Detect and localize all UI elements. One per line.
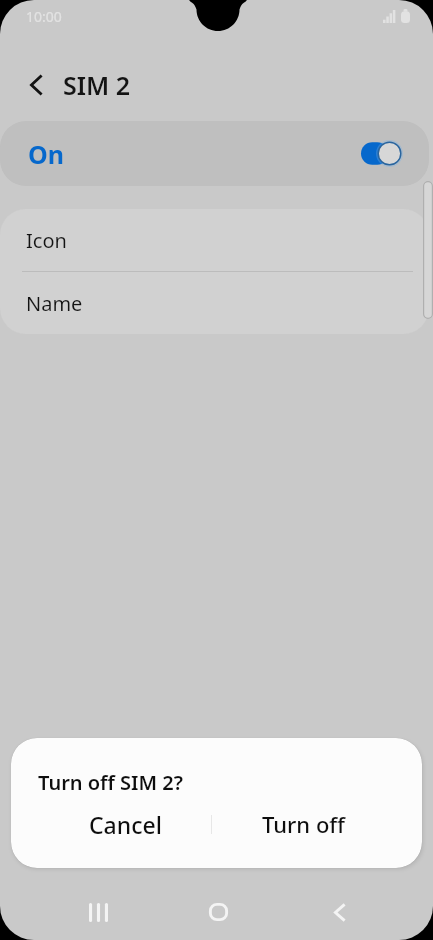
staticText: Turn off SIM 2?	[38, 769, 183, 796]
staticText: 10:00	[26, 7, 62, 26]
button[interactable]: On	[0, 121, 429, 186]
staticText: SIM 2	[63, 68, 131, 102]
button[interactable]: Recent apps	[70, 884, 126, 940]
staticText: Cancel	[89, 809, 162, 840]
button[interactable]: Cancel	[11, 797, 211, 851]
button[interactable]: Name	[0, 272, 429, 334]
button[interactable]: Icon	[0, 209, 429, 271]
button[interactable]: Navigate up	[18, 67, 54, 103]
staticText: Name	[26, 290, 83, 317]
staticText: Icon	[26, 227, 67, 254]
button[interactable]: Back	[312, 884, 368, 940]
button[interactable]: Turn off	[212, 797, 422, 851]
staticText: Turn off	[262, 809, 346, 839]
button[interactable]: Home	[190, 884, 247, 940]
staticText: On	[28, 137, 65, 171]
